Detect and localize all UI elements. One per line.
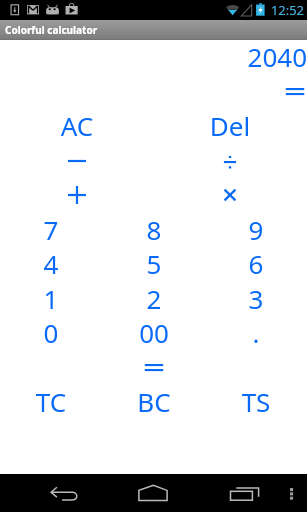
- button[interactable]: More options: [281, 474, 303, 512]
- button[interactable]: BC: [119, 384, 189, 418]
- button[interactable]: Home: [130, 474, 178, 512]
- staticText: Del: [195, 108, 265, 142]
- staticText: AC: [42, 108, 112, 142]
- staticText: 2040: [0, 39, 307, 73]
- button[interactable]: 6: [221, 246, 291, 280]
- staticText: 1: [16, 281, 86, 315]
- staticText: 8: [119, 212, 189, 246]
- staticText: 00: [119, 315, 189, 349]
- button[interactable]: 2: [119, 281, 189, 315]
- staticText: .: [221, 315, 291, 349]
- button[interactable]: .: [221, 315, 291, 349]
- button[interactable]: Recent apps: [220, 474, 268, 512]
- button[interactable]: 9: [221, 212, 291, 246]
- staticText: 12:52: [271, 1, 304, 19]
- button[interactable]: Equals: [124, 350, 184, 384]
- button[interactable]: 5: [119, 246, 189, 280]
- staticText: 2: [119, 281, 189, 315]
- button[interactable]: AC: [42, 108, 112, 142]
- button[interactable]: 7: [16, 212, 86, 246]
- staticText: TC: [16, 384, 86, 418]
- button[interactable]: 0: [16, 315, 86, 349]
- staticText: TS: [221, 384, 291, 418]
- button[interactable]: 3: [221, 281, 291, 315]
- button[interactable]: 4: [16, 246, 86, 280]
- button[interactable]: 1: [16, 281, 86, 315]
- staticText: 0: [16, 315, 86, 349]
- button[interactable]: Del: [195, 108, 265, 142]
- staticText: 9: [221, 212, 291, 246]
- button[interactable]: Plus: [47, 177, 107, 211]
- staticText: 3: [221, 281, 291, 315]
- staticText: Colorful calculator: [5, 23, 98, 37]
- button[interactable]: Equals: [265, 74, 307, 108]
- button[interactable]: Divide: [200, 143, 260, 177]
- staticText: 5: [119, 246, 189, 280]
- button[interactable]: 00: [119, 315, 189, 349]
- staticText: BC: [119, 384, 189, 418]
- staticText: 7: [16, 212, 86, 246]
- button[interactable]: TC: [16, 384, 86, 418]
- button[interactable]: 8: [119, 212, 189, 246]
- staticText: 6: [221, 246, 291, 280]
- button[interactable]: Back: [40, 474, 88, 512]
- button[interactable]: TS: [221, 384, 291, 418]
- button[interactable]: Multiply: [200, 177, 260, 211]
- button[interactable]: Minus: [47, 143, 107, 177]
- staticText: 4: [16, 246, 86, 280]
